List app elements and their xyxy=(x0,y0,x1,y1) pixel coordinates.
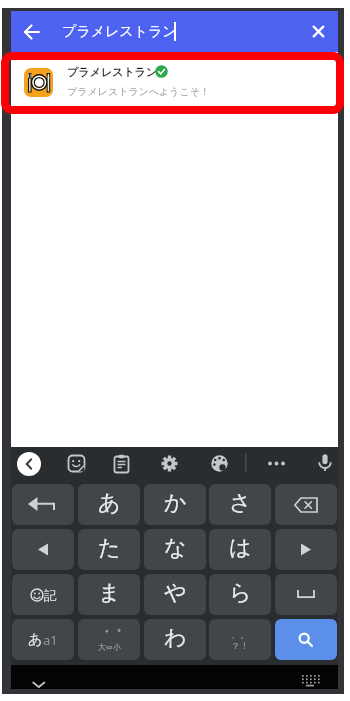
staticText: ら xyxy=(229,579,252,607)
staticText: 記 xyxy=(44,587,57,603)
staticText: プラメレストランへようこそ！ xyxy=(67,85,211,98)
staticText: わ xyxy=(164,624,187,652)
staticText: 、。 xyxy=(231,629,249,640)
button[interactable]: あ xyxy=(78,484,140,525)
staticText: ゛゜ xyxy=(97,627,122,642)
button[interactable] xyxy=(111,453,132,474)
staticText: な xyxy=(164,534,187,562)
button[interactable] xyxy=(275,574,337,615)
button[interactable] xyxy=(12,484,74,525)
button[interactable] xyxy=(306,18,334,46)
staticText: あ xyxy=(98,489,121,517)
button[interactable]: ら xyxy=(209,574,271,615)
staticText: た xyxy=(98,534,121,562)
staticText: ま xyxy=(98,579,121,607)
button[interactable] xyxy=(314,452,336,474)
staticText: プラメレストラン xyxy=(67,65,158,79)
button[interactable]: わ xyxy=(144,619,206,660)
button[interactable]: ゛゜ xyxy=(78,619,140,660)
button[interactable]: な xyxy=(144,529,206,570)
button[interactable] xyxy=(275,484,337,525)
staticText: プラメレストラン xyxy=(62,23,177,41)
button[interactable] xyxy=(159,453,180,474)
button[interactable]: あ xyxy=(12,619,74,660)
button[interactable] xyxy=(66,453,87,474)
staticText: か xyxy=(164,489,187,517)
button[interactable] xyxy=(299,671,323,689)
button[interactable]: ま xyxy=(78,574,140,615)
button[interactable]: 、。 xyxy=(209,619,271,660)
staticText: あ xyxy=(28,631,43,649)
staticText: ？！ xyxy=(231,640,249,651)
staticText: や xyxy=(164,579,187,607)
button[interactable]: た xyxy=(78,529,140,570)
button[interactable] xyxy=(17,452,41,476)
button[interactable] xyxy=(12,529,74,570)
button[interactable]: 記 xyxy=(12,574,74,615)
staticText: 大⇔小 xyxy=(98,642,121,652)
button[interactable] xyxy=(275,529,337,570)
button[interactable]: は xyxy=(209,529,271,570)
button[interactable] xyxy=(27,673,51,689)
staticText: さ xyxy=(229,489,252,517)
button[interactable]: さ xyxy=(209,484,271,525)
button[interactable] xyxy=(266,453,287,474)
button[interactable]: プラメレストラン xyxy=(11,60,338,106)
staticText: は xyxy=(229,534,252,562)
staticText: a1 xyxy=(43,631,58,649)
button[interactable] xyxy=(14,16,46,47)
button[interactable]: か xyxy=(144,484,206,525)
button[interactable] xyxy=(275,619,337,660)
button[interactable] xyxy=(209,453,230,474)
button[interactable]: プラメレストラン xyxy=(11,11,338,52)
button[interactable]: や xyxy=(144,574,206,615)
